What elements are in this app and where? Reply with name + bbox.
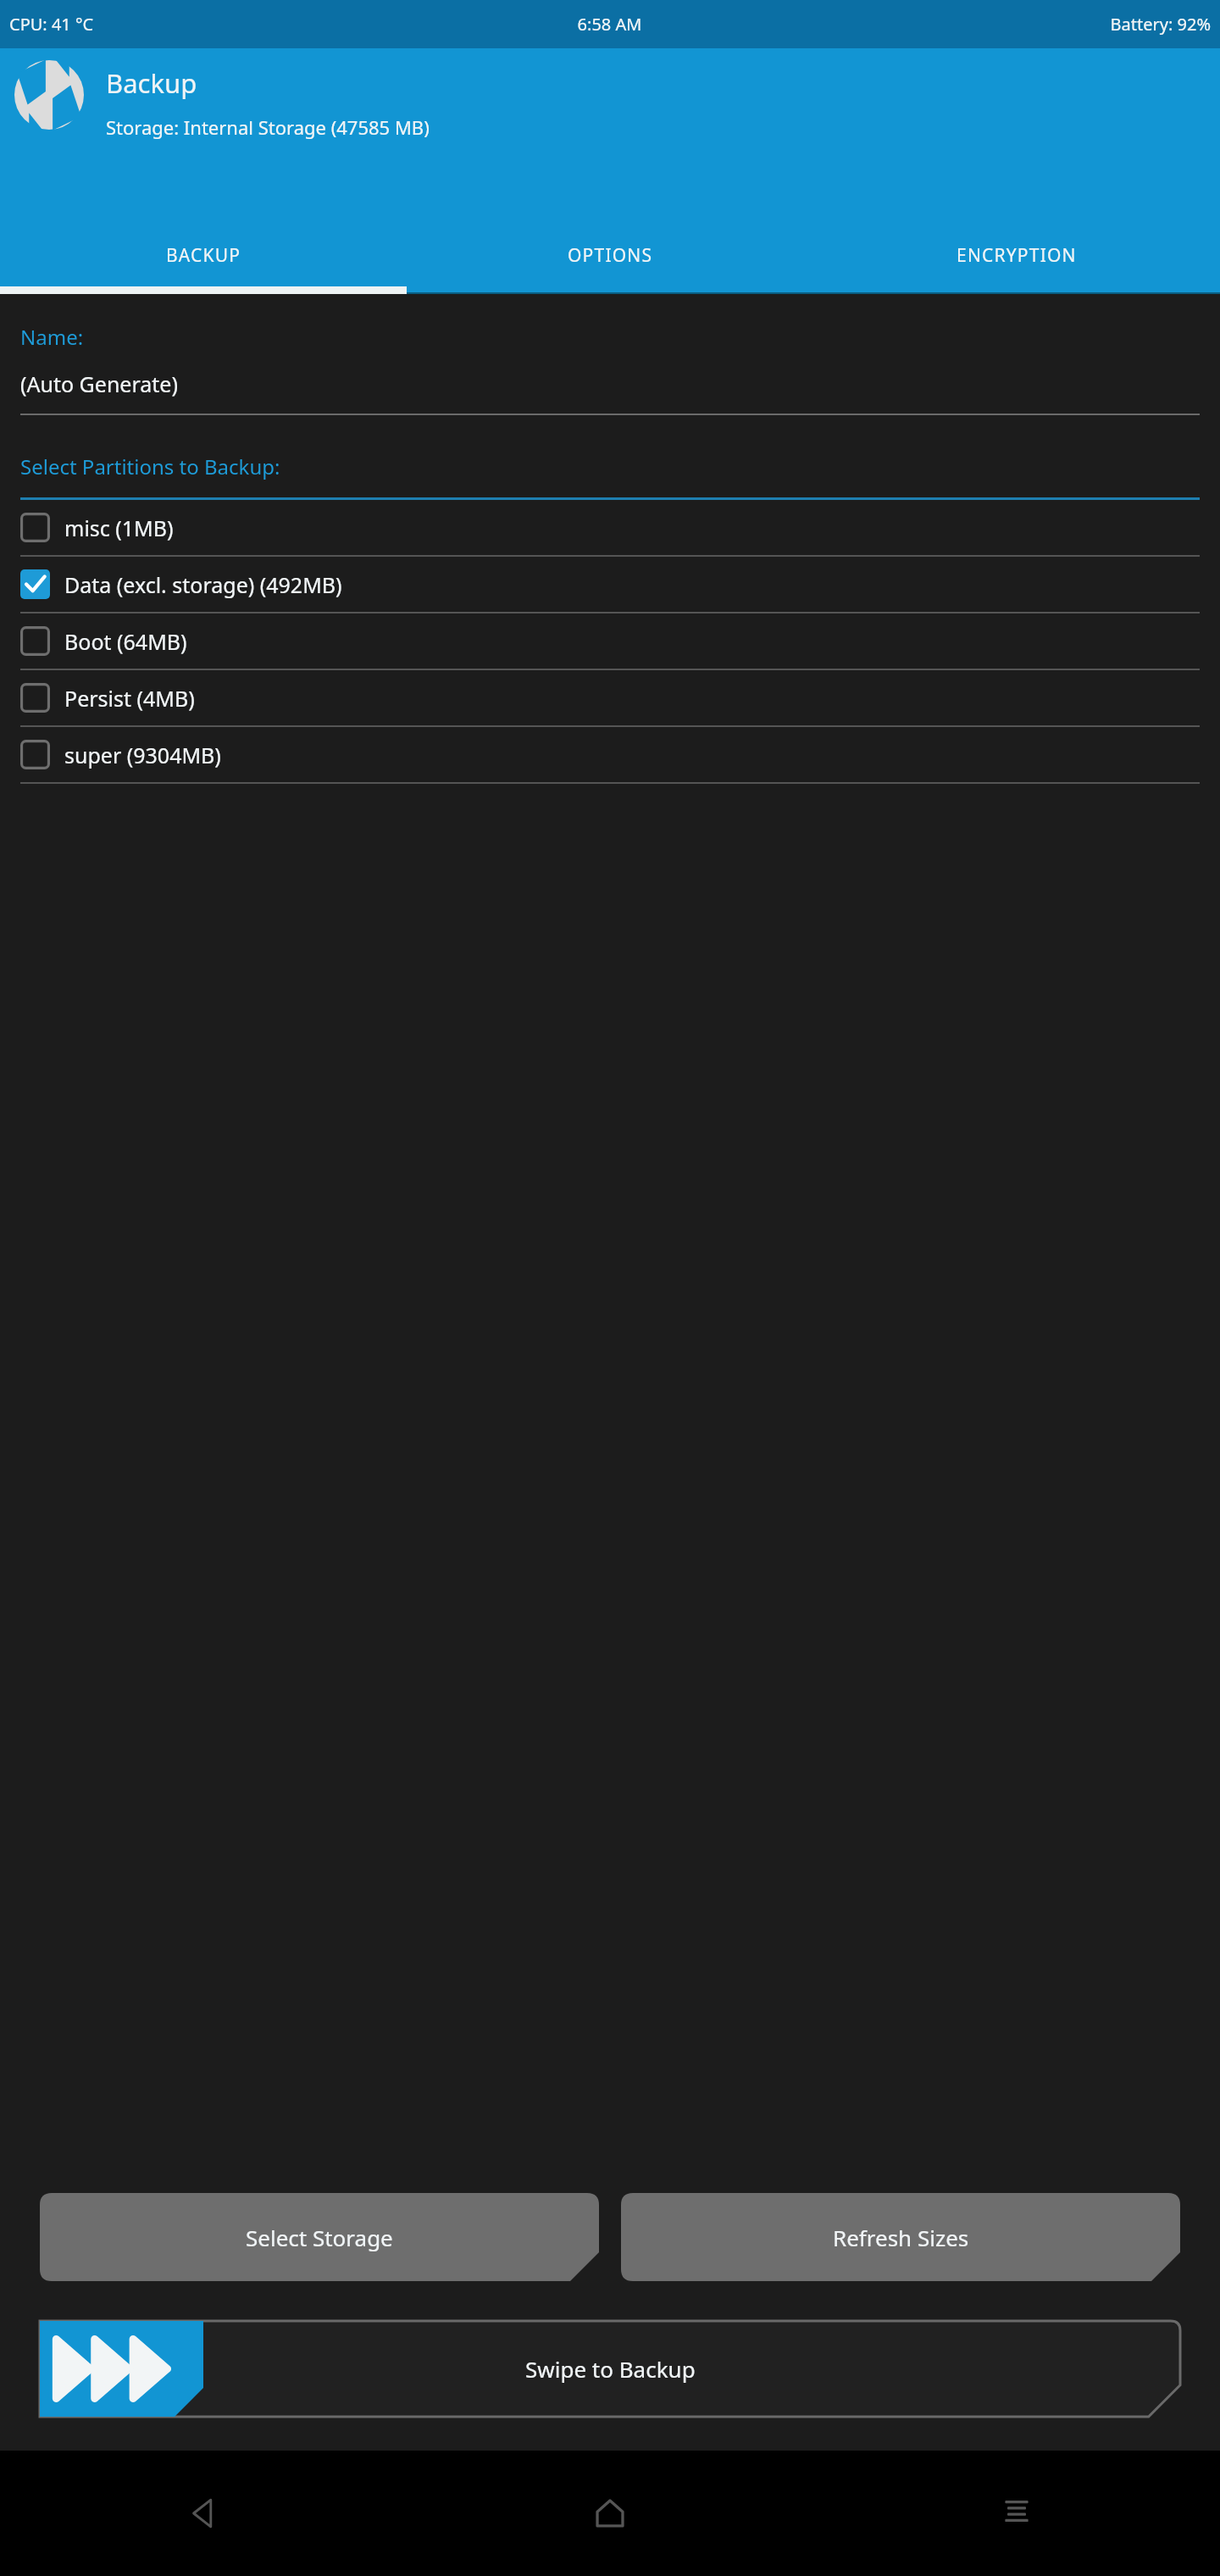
button[interactable]: Persist (4MB): [0, 670, 1220, 727]
staticText: super (9304MB): [64, 741, 221, 769]
button[interactable]: BACKUP: [0, 225, 407, 286]
staticText: CPU: 41 °C: [9, 13, 409, 36]
button[interactable]: Data (excl. storage) (492MB): [0, 557, 1220, 613]
staticText: OPTIONS: [568, 243, 653, 268]
button[interactable]: Home: [407, 2451, 813, 2576]
button[interactable]: misc (1MB): [0, 500, 1220, 557]
staticText: Refresh Sizes: [833, 2223, 969, 2252]
staticText: Battery: 92%: [810, 13, 1211, 36]
staticText: Name:: [20, 323, 84, 351]
staticText: Boot (64MB): [64, 627, 187, 656]
staticText: Select Partitions to Backup:: [20, 452, 280, 480]
staticText: misc (1MB): [64, 514, 174, 542]
staticText: Data (excl. storage) (492MB): [64, 570, 342, 599]
staticText: Persist (4MB): [64, 684, 195, 713]
button[interactable]: Boot (64MB): [0, 613, 1220, 670]
staticText: ENCRYPTION: [957, 243, 1077, 268]
staticText: BACKUP: [166, 243, 241, 268]
staticText: Storage: Internal Storage (47585 MB): [106, 114, 430, 140]
button[interactable]: Swipe to Backup: [40, 2321, 1180, 2417]
staticText: 6:58 AM: [409, 13, 810, 36]
button[interactable]: ENCRYPTION: [813, 225, 1220, 286]
button[interactable]: OPTIONS: [407, 225, 813, 286]
button[interactable]: super (9304MB): [0, 727, 1220, 784]
button[interactable]: Recent apps: [813, 2451, 1220, 2576]
button[interactable]: Back: [0, 2451, 407, 2576]
button[interactable]: Refresh Sizes: [621, 2193, 1180, 2281]
button[interactable]: Select Storage: [40, 2193, 599, 2281]
staticText: Swipe to Backup: [525, 2354, 696, 2384]
staticText: Select Storage: [246, 2223, 393, 2252]
staticText: (Auto Generate): [20, 369, 178, 398]
staticText: Backup: [106, 65, 197, 101]
